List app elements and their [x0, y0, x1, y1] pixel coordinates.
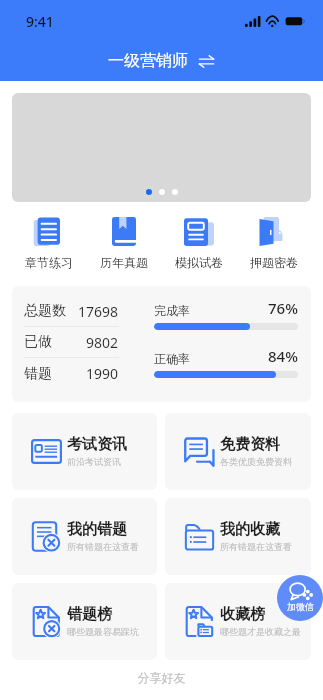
button[interactable]: 轮播广告	[12, 93, 311, 202]
staticText: 考试资讯	[67, 435, 127, 454]
staticText: 已做	[24, 333, 52, 351]
staticText: 17698	[78, 302, 119, 321]
staticText: 前沿考试资讯	[67, 456, 121, 467]
button[interactable]: 收藏榜	[165, 583, 311, 660]
staticText: 所有错题在这查看	[67, 541, 139, 552]
staticText: 押题密卷	[250, 255, 298, 270]
staticText: 我的收藏	[220, 520, 280, 539]
button[interactable]: 免费资料	[165, 413, 311, 490]
staticText: 84%	[268, 346, 298, 366]
staticText: 1990	[86, 364, 119, 383]
staticText: 正确率	[154, 351, 190, 366]
button[interactable]: 分享好友	[0, 670, 323, 685]
button[interactable]: 我的收藏	[165, 498, 311, 575]
button[interactable]: 章节练习	[12, 212, 86, 270]
staticText: 9:41	[26, 12, 54, 31]
staticText: 总题数	[24, 302, 66, 320]
staticText: 收藏榜	[220, 605, 265, 624]
button[interactable]: 加微信	[277, 575, 323, 621]
staticText: 所有错题在这查看	[220, 541, 292, 552]
button[interactable]: 押题密卷	[236, 212, 311, 270]
staticText: 各类优质免费资料	[220, 456, 292, 467]
staticText: 76%	[268, 298, 298, 318]
button[interactable]: 错题榜	[12, 583, 157, 660]
staticText: 我的错题	[67, 520, 127, 539]
staticText: 加微信	[287, 601, 314, 612]
staticText: 模拟试卷	[175, 255, 223, 270]
button[interactable]: 考试资讯	[12, 413, 157, 490]
staticText: 免费资料	[220, 435, 280, 454]
button[interactable]: 我的错题	[12, 498, 157, 575]
button[interactable]: 模拟试卷	[161, 212, 236, 270]
staticText: 章节练习	[25, 255, 73, 270]
staticText: 错题榜	[67, 605, 112, 624]
button[interactable]: 切换科目	[198, 53, 215, 70]
staticText: 哪些题才是收藏之最	[220, 626, 301, 637]
staticText: 错题	[24, 365, 52, 383]
staticText: 哪些题最容易踩坑	[67, 626, 139, 637]
staticText: 9802	[86, 333, 119, 352]
staticText: 完成率	[154, 303, 190, 318]
staticText: 历年真题	[100, 255, 148, 270]
button[interactable]: 历年真题	[86, 212, 161, 270]
staticText: 分享好友	[0, 670, 323, 685]
staticText: 一级营销师	[108, 51, 188, 71]
